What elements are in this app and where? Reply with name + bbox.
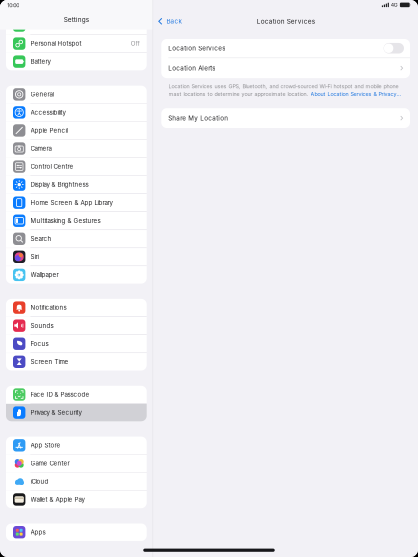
button[interactable]: Control Centre: [6, 158, 147, 175]
staticText: Accessibility: [31, 109, 66, 116]
button[interactable]: Camera: [6, 140, 147, 157]
button[interactable]: Wallpaper: [6, 266, 147, 283]
staticText: Multitasking & Gestures: [31, 217, 101, 224]
button[interactable]: Game Center: [6, 455, 147, 472]
staticText: Off: [131, 40, 140, 47]
staticText: Control Centre: [31, 163, 74, 170]
button[interactable]: Focus: [6, 335, 147, 352]
staticText: App Store: [31, 442, 61, 449]
button[interactable]: Notifications: [6, 299, 147, 316]
staticText: Location Alerts: [168, 64, 215, 72]
button[interactable]: Siri: [6, 248, 147, 265]
staticText: Notifications: [31, 304, 67, 311]
button[interactable]: Wallet & Apple Pay: [6, 491, 147, 508]
button[interactable]: Apps: [6, 523, 147, 541]
staticText: Screen Time: [31, 358, 69, 365]
staticText: Game Center: [31, 460, 70, 467]
staticText: Location Services uses GPS, Bluetooth, a…: [169, 83, 399, 90]
staticText: Camera: [31, 145, 52, 152]
button[interactable]: Privacy & Security: [6, 404, 147, 421]
button[interactable]: Search: [6, 230, 147, 247]
staticText: Privacy & Security: [31, 409, 82, 416]
staticText: Search: [31, 235, 52, 242]
button[interactable]: Accessibility: [6, 104, 147, 121]
button[interactable]: Mobile Data: [6, 17, 147, 34]
button[interactable]: Location Services toggle: [384, 42, 404, 54]
staticText: Location Services: [168, 44, 225, 52]
button[interactable]: App Store: [6, 437, 147, 454]
staticText: Location Services: [257, 17, 315, 25]
button[interactable]: Display & Brightness: [6, 176, 147, 193]
button[interactable]: Share My Location: [153, 108, 418, 128]
button[interactable]: Personal Hotspot: [6, 35, 147, 52]
staticText: Share My Location: [168, 114, 228, 122]
button[interactable]: Home Screen & App Library: [6, 194, 147, 211]
button[interactable]: Face ID & Passcode: [6, 386, 147, 403]
button[interactable]: Location Alerts: [161, 58, 410, 78]
button[interactable]: General: [6, 86, 147, 103]
staticText: Wallpaper: [31, 271, 59, 279]
staticText: Apps: [31, 528, 46, 536]
staticText: Back: [166, 17, 181, 25]
button[interactable]: Battery: [6, 53, 147, 70]
staticText: About Location Services & Privacy…: [311, 91, 402, 97]
staticText: Sounds: [31, 322, 54, 329]
button[interactable]: About Location Services & Privacy…: [311, 91, 402, 97]
button[interactable]: Back: [153, 15, 181, 27]
staticText: 4G: [391, 2, 398, 8]
staticText: Focus: [31, 340, 49, 347]
staticText: mast locations to determine your approxi…: [169, 91, 311, 97]
staticText: Wallet & Apple Pay: [31, 496, 85, 503]
staticText: Battery: [31, 58, 51, 65]
staticText: Personal Hotspot: [31, 40, 82, 47]
staticText: Settings: [64, 16, 89, 24]
staticText: Siri: [31, 253, 39, 260]
staticText: Face ID & Passcode: [31, 391, 90, 398]
button[interactable]: Screen Time: [6, 353, 147, 370]
button[interactable]: Sounds: [6, 317, 147, 334]
staticText: General: [31, 91, 54, 98]
button[interactable]: Multitasking & Gestures: [6, 212, 147, 229]
staticText: Display & Brightness: [31, 181, 89, 188]
button[interactable]: iCloud: [6, 473, 147, 490]
button[interactable]: Apple Pencil: [6, 122, 147, 139]
staticText: iCloud: [31, 478, 49, 485]
staticText: Home Screen & App Library: [31, 199, 113, 206]
staticText: 10:00: [7, 2, 19, 8]
staticText: Apple Pencil: [31, 127, 68, 134]
